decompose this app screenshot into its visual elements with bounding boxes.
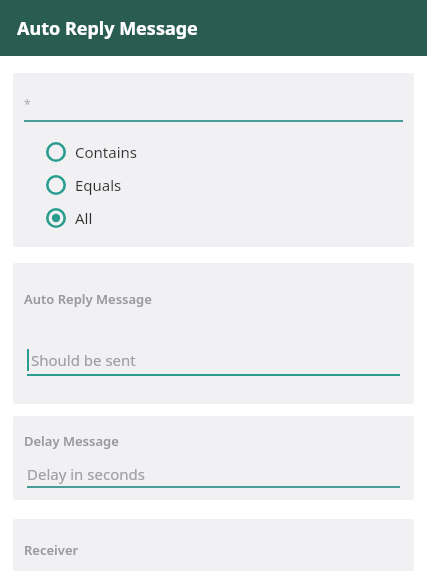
staticText: Contains [75,142,137,162]
button[interactable]: Contains [13,135,414,168]
staticText: Auto Reply Message [24,290,152,308]
staticText: Equals [75,175,122,195]
staticText: Delay in seconds [27,464,145,484]
staticText: All [75,208,93,228]
staticText: Receiver [24,541,79,559]
staticText: Delay Message [24,432,119,450]
button[interactable]: Delay in seconds [27,462,400,486]
button[interactable]: Should be sent [27,346,400,374]
button[interactable]: All [13,201,414,234]
staticText: Should be sent [31,350,136,370]
staticText: Auto Reply Message [17,16,198,41]
button[interactable]: Equals [13,168,414,201]
staticText: * [24,96,31,112]
